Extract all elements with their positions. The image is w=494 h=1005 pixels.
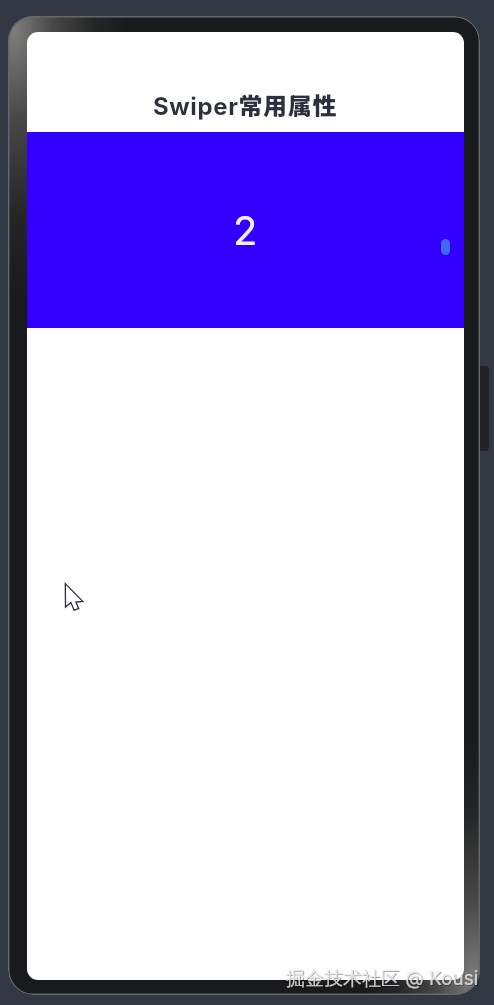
button[interactable]: Power button [478, 366, 489, 451]
staticText: 2 [233, 206, 258, 254]
staticText: 掘金技术社区 @ Kousi [287, 968, 480, 992]
button[interactable]: Swiper page 2 [27, 132, 464, 328]
button[interactable]: Swiper常用属性 [27, 32, 464, 132]
staticText: Swiper常用属性 [153, 87, 338, 122]
staticText: 掘金技术社区 @ Kousi [286, 967, 479, 991]
